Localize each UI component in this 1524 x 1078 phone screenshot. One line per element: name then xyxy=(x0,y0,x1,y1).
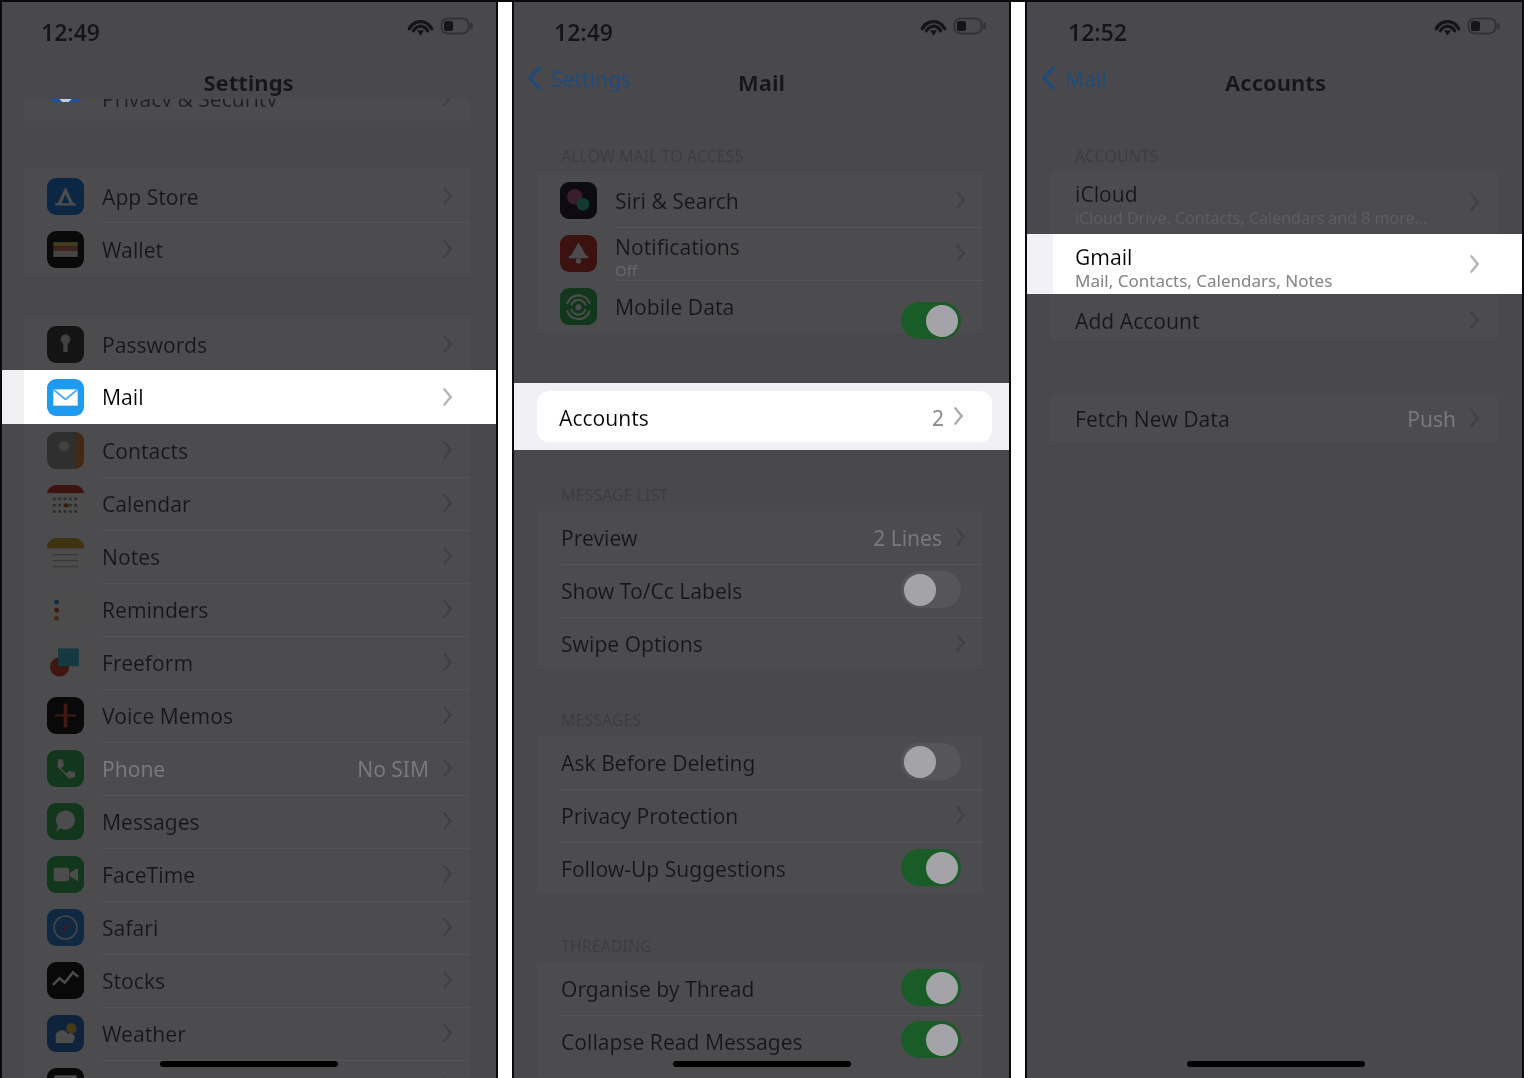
staticText: Safari xyxy=(102,914,159,943)
button[interactable]: Preview xyxy=(513,511,1010,564)
button[interactable]: Back to Settings xyxy=(522,62,652,96)
staticText: Contacts xyxy=(102,437,189,466)
button[interactable]: Weather xyxy=(0,1007,497,1060)
staticText: THREADING xyxy=(561,935,652,957)
button[interactable]: Siri & Search xyxy=(513,174,1010,227)
button[interactable]: Notifications xyxy=(513,227,1010,280)
staticText: Accounts xyxy=(559,404,649,433)
staticText: Mail, Contacts, Calendars, Notes xyxy=(1075,269,1333,292)
staticText: Siri & Search xyxy=(615,187,739,216)
staticText: Stocks xyxy=(102,967,166,996)
staticText: No SIM xyxy=(0,755,429,784)
button[interactable]: Add Account xyxy=(1027,294,1524,347)
button[interactable]: Privacy Protection xyxy=(513,789,1010,842)
button[interactable]: Messages xyxy=(0,795,497,848)
staticText: Preview xyxy=(561,524,638,553)
staticText: ACCOUNTS xyxy=(1075,145,1159,167)
staticText: Notes xyxy=(102,543,161,572)
staticText: Privacy & Security xyxy=(102,99,278,107)
staticText: Mail xyxy=(513,67,1010,97)
button[interactable]: On xyxy=(901,849,961,886)
button[interactable]: On xyxy=(901,302,961,339)
button[interactable]: Fetch New Data xyxy=(1027,393,1524,443)
button[interactable]: Phone xyxy=(0,742,497,795)
staticText: Off xyxy=(615,260,638,280)
staticText: 12:49 xyxy=(41,16,100,47)
staticText: MESSAGES xyxy=(561,709,642,731)
button[interactable]: Notes xyxy=(0,530,497,583)
staticText: Accounts xyxy=(1027,67,1524,97)
staticText: Push xyxy=(1027,405,1456,434)
staticText: Collapse Read Messages xyxy=(561,1028,803,1057)
button[interactable]: Gmail xyxy=(1027,234,1524,294)
staticText: App Store xyxy=(102,183,199,212)
staticText: Fetch New Data xyxy=(1075,405,1230,434)
staticText: Weather xyxy=(102,1020,186,1049)
staticText: Calendar xyxy=(102,490,191,519)
button[interactable]: Calendar xyxy=(0,477,497,530)
staticText: Voice Memos xyxy=(102,702,233,731)
staticText: 2 Lines xyxy=(513,524,942,553)
button[interactable]: Off xyxy=(901,571,961,608)
button[interactable]: Collapse Read Messages xyxy=(513,1015,1010,1068)
staticText: Privacy Protection xyxy=(561,802,739,831)
staticText: Freeform xyxy=(102,649,194,678)
staticText: Show To/Cc Labels xyxy=(561,577,743,606)
staticText: Gmail xyxy=(1075,243,1133,272)
button[interactable]: FaceTime xyxy=(0,848,497,901)
button[interactable]: Follow-Up Suggestions xyxy=(513,842,1010,895)
staticText: Notifications xyxy=(615,233,740,262)
staticText: Messages xyxy=(102,808,200,837)
staticText: Mobile Data xyxy=(615,293,735,322)
staticText: Ask Before Deleting xyxy=(561,749,756,778)
button[interactable]: On xyxy=(901,969,961,1006)
staticText: 12:52 xyxy=(1068,16,1127,47)
button[interactable]: Translate xyxy=(0,1060,497,1078)
staticText: Phone xyxy=(102,755,166,784)
staticText: Settings xyxy=(0,67,497,97)
staticText: Add Account xyxy=(1075,307,1200,336)
button[interactable]: Back to Mail xyxy=(1036,62,1166,96)
staticText: iCloud xyxy=(1075,180,1138,209)
staticText: FaceTime xyxy=(102,861,196,890)
staticText: Mail xyxy=(1065,65,1107,94)
button[interactable]: Organise by Thread xyxy=(513,962,1010,1015)
staticText: 2 xyxy=(932,404,945,433)
staticText: 12:49 xyxy=(554,16,613,47)
button[interactable]: Stocks xyxy=(0,954,497,1007)
button[interactable]: On xyxy=(901,1021,961,1058)
staticText: Settings xyxy=(551,65,631,94)
staticText: Mail xyxy=(102,383,144,412)
staticText: ALLOW MAIL TO ACCESS xyxy=(561,145,744,167)
button[interactable]: Mobile Data xyxy=(513,280,1010,333)
button[interactable]: Privacy & Security xyxy=(24,99,470,121)
button[interactable]: Contacts xyxy=(0,424,497,477)
button[interactable]: Wallet xyxy=(0,223,497,276)
button[interactable]: Mail xyxy=(0,370,497,424)
staticText: Organise by Thread xyxy=(561,975,755,1004)
button[interactable]: iCloud xyxy=(1027,171,1524,234)
staticText: Follow-Up Suggestions xyxy=(561,855,786,884)
staticText: Swipe Options xyxy=(561,630,703,659)
button[interactable]: Passwords xyxy=(0,318,497,371)
button[interactable]: Accounts xyxy=(537,391,992,442)
button[interactable]: Ask Before Deleting xyxy=(513,736,1010,789)
button[interactable]: Off xyxy=(901,743,961,780)
button[interactable]: App Store xyxy=(0,170,497,223)
staticText: Wallet xyxy=(102,236,164,265)
button[interactable]: Voice Memos xyxy=(0,689,497,742)
button[interactable]: Safari xyxy=(0,901,497,954)
staticText: Passwords xyxy=(102,331,208,360)
button[interactable]: Show To/Cc Labels xyxy=(513,564,1010,617)
button[interactable]: Swipe Options xyxy=(513,617,1010,670)
staticText: MESSAGE LIST xyxy=(561,484,669,506)
button[interactable]: Reminders xyxy=(0,583,497,636)
button[interactable]: Freeform xyxy=(0,636,497,689)
staticText: Reminders xyxy=(102,596,209,625)
staticText: iCloud Drive, Contacts, Calendars and 8 … xyxy=(1075,207,1428,229)
